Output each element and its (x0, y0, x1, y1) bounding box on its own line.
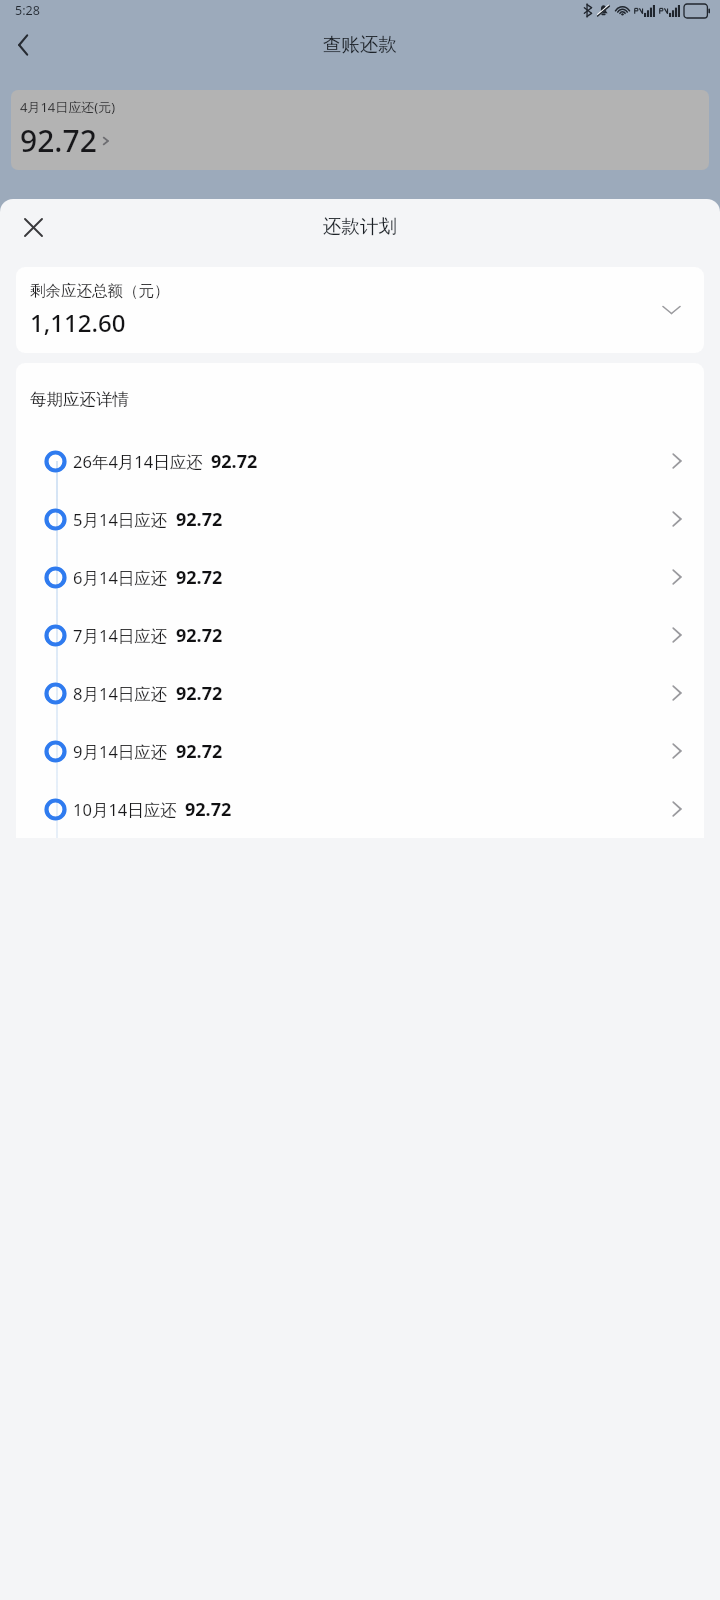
staticText: 还款计划 (323, 215, 397, 238)
staticText: 7月14日应还 (73, 624, 168, 647)
staticText: 剩余应还总额（元） (30, 281, 170, 301)
staticText: 查账还款 (323, 33, 397, 56)
button[interactable]: 5月14日应还 (16, 490, 704, 548)
button[interactable]: 8月14日应还 (16, 664, 704, 722)
staticText: 92.72 (185, 797, 232, 822)
button[interactable]: Close (7, 201, 59, 253)
button[interactable]: 剩余应还总额（元） (16, 267, 704, 353)
staticText: 92.72 (176, 623, 223, 648)
button[interactable]: 10月14日应还 (16, 780, 704, 838)
staticText: 8月14日应还 (73, 682, 168, 705)
staticText: 每期应还详情 (30, 389, 129, 410)
staticText: 92.72 (176, 681, 223, 706)
staticText: 5:28 (15, 2, 40, 19)
staticText: 92.72 (176, 739, 223, 764)
staticText: 4月14日应还(元) (20, 98, 116, 116)
button[interactable]: 7月14日应还 (16, 606, 704, 664)
staticText: 1,112.60 (30, 306, 126, 339)
button[interactable]: Back (0, 22, 46, 68)
staticText: 92.72 (211, 449, 258, 474)
staticText: 26年4月14日应还 (73, 450, 203, 473)
button[interactable]: 6月14日应还 (16, 548, 704, 606)
staticText: 92.72 (176, 507, 223, 532)
staticText: 92.72 (20, 120, 97, 161)
button[interactable]: 26年4月14日应还 (16, 432, 704, 490)
button[interactable]: 9月14日应还 (16, 722, 704, 780)
staticText: 6月14日应还 (73, 566, 168, 589)
staticText: 5月14日应还 (73, 508, 168, 531)
staticText: 9月14日应还 (73, 740, 168, 763)
staticText: 10月14日应还 (73, 798, 177, 821)
staticText: 92.72 (176, 565, 223, 590)
